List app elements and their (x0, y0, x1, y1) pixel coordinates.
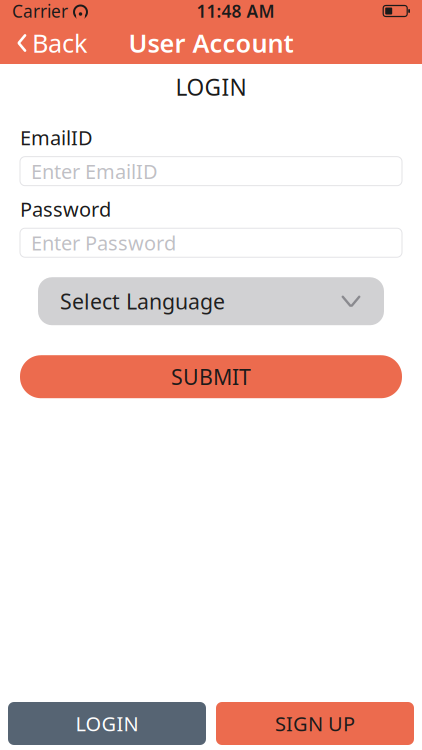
button[interactable]: Back (6, 20, 98, 66)
button[interactable]: SUBMIT (20, 355, 402, 398)
staticText: SIGN UP (275, 710, 355, 737)
staticText: Password (20, 196, 111, 222)
staticText: SUBMIT (171, 363, 251, 391)
staticText: EmailID (20, 124, 93, 151)
staticText: 11:48 AM (197, 0, 275, 22)
staticText: LOGIN (175, 72, 246, 102)
button[interactable]: Select Language (38, 277, 384, 325)
staticText: Carrier (12, 0, 68, 22)
staticText: LOGIN (75, 710, 138, 737)
staticText: Enter EmailID (31, 158, 158, 184)
staticText: Enter Password (31, 229, 176, 256)
button[interactable]: SIGN UP (216, 702, 414, 745)
button[interactable]: LOGIN (8, 702, 206, 745)
staticText: Select Language (60, 287, 225, 315)
staticText: User Account (128, 26, 293, 60)
staticText: Back (32, 26, 88, 60)
